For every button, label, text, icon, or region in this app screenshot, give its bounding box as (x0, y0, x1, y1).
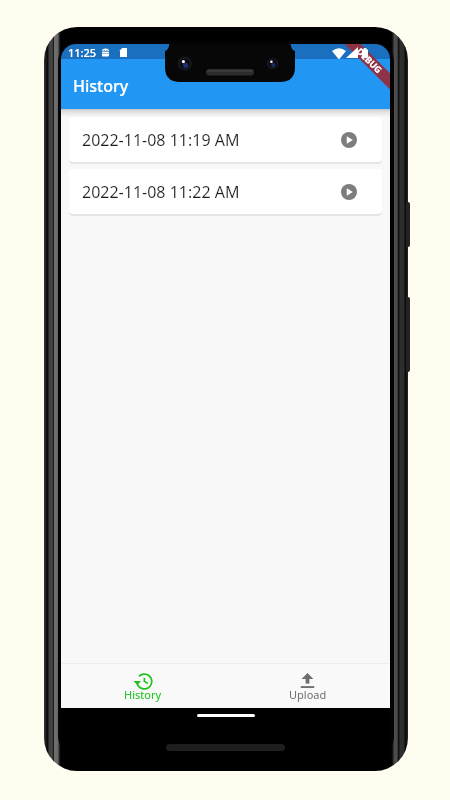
staticText: History (124, 687, 162, 702)
other: Play (341, 184, 357, 200)
other: Play (341, 132, 357, 148)
staticText: History (73, 75, 129, 97)
staticText: 2022-11-08 11:19 AM (82, 129, 240, 151)
staticText: 2022-11-08 11:22 AM (82, 181, 240, 203)
button[interactable]: 2022-11-08 11:19 AM (69, 117, 382, 162)
button[interactable]: History (61, 663, 225, 708)
staticText: 11:25 (68, 45, 97, 60)
staticText: Upload (289, 687, 327, 702)
button[interactable]: 2022-11-08 11:22 AM (69, 169, 382, 214)
button[interactable]: Upload (225, 663, 390, 708)
staticText: DEBUG (354, 45, 385, 75)
